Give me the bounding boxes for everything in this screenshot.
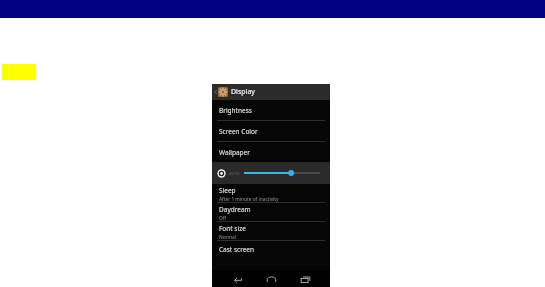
button[interactable]: Recent apps: [296, 272, 314, 286]
button[interactable]: [244, 168, 324, 178]
staticText: Wallpaper: [219, 148, 250, 157]
staticText: After 1 minute of inactivity: [219, 196, 279, 202]
button[interactable]: Wallpaper: [212, 142, 330, 162]
staticText: Brightness: [219, 106, 252, 115]
staticText: Font size: [219, 224, 246, 233]
button[interactable]: Daydream: [212, 203, 330, 221]
button[interactable]: Sleep: [212, 184, 330, 202]
button[interactable]: Back: [228, 272, 246, 286]
other: Auto brightness: [217, 169, 226, 178]
button[interactable]: Font size: [212, 222, 330, 240]
staticText: Off: [219, 215, 227, 221]
staticText: Cast screen: [219, 245, 255, 254]
staticText: Screen Color: [219, 127, 258, 136]
button[interactable]: Navigate up: [212, 84, 330, 100]
staticText: Sleep: [219, 186, 236, 195]
button[interactable]: Screen Color: [212, 121, 330, 141]
button[interactable]: Auto brightness: [212, 162, 330, 184]
staticText: Display: [231, 87, 255, 97]
staticText: Daydream: [219, 205, 251, 214]
staticText: Normal: [219, 234, 236, 240]
button[interactable]: Cast screen: [212, 241, 330, 257]
staticText: AUTO: [229, 171, 240, 176]
button[interactable]: Home: [262, 272, 280, 286]
other: Navigate up: [214, 89, 217, 95]
button[interactable]: Brightness: [212, 100, 330, 120]
